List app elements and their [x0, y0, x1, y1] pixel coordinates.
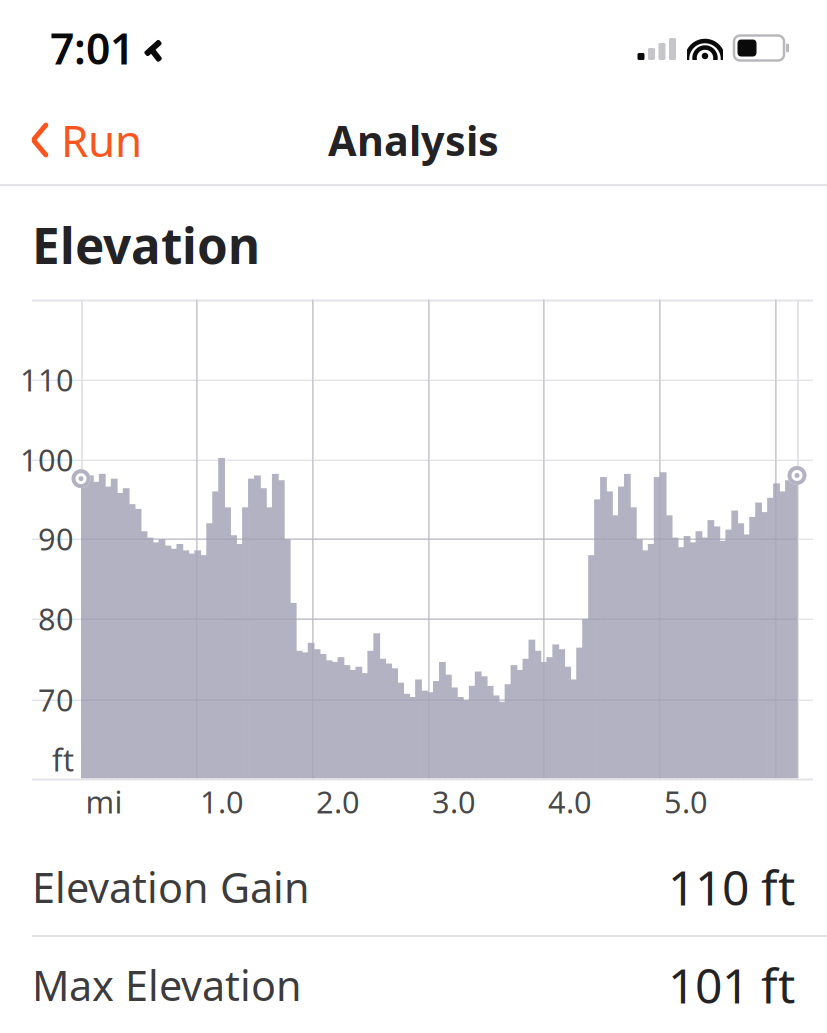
staticText: 100 — [20, 439, 74, 480]
staticText: 110 ft — [668, 855, 795, 919]
staticText: 90 — [38, 518, 74, 559]
staticText: 4.0 — [548, 781, 592, 822]
staticText: mi — [85, 781, 122, 822]
staticText: 3.0 — [432, 781, 476, 822]
button[interactable]: Elevation Gain — [0, 839, 827, 935]
staticText: Run — [61, 111, 142, 169]
staticText: 101 ft — [668, 953, 795, 1017]
staticText: Elevation Gain — [32, 860, 310, 914]
button[interactable]: Max Elevation — [0, 937, 827, 1033]
staticText: 70 — [38, 679, 74, 720]
staticText: 1.0 — [200, 781, 244, 822]
staticText: 110 — [20, 359, 74, 400]
staticText: 80 — [38, 598, 74, 639]
button[interactable]: Run — [0, 99, 142, 181]
staticText: 7:01 — [50, 20, 134, 76]
staticText: 2.0 — [316, 781, 360, 822]
staticText: Elevation — [32, 212, 260, 277]
staticText: Analysis — [328, 113, 499, 167]
staticText: 5.0 — [664, 781, 708, 822]
staticText: ft — [52, 739, 74, 780]
staticText: Max Elevation — [32, 958, 302, 1012]
